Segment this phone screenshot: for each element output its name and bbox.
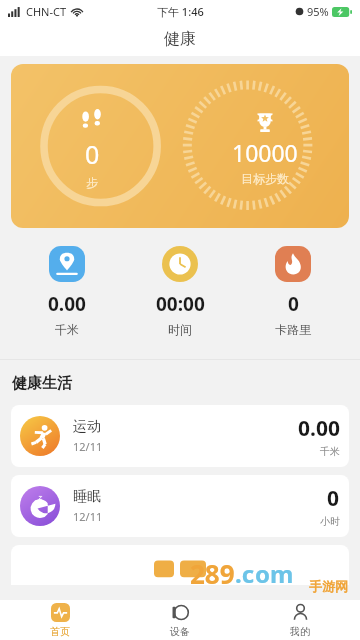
staticText: 0 <box>288 291 299 317</box>
staticText: 手游网 <box>309 578 348 594</box>
staticText: 健康生活 <box>12 374 72 393</box>
staticText: 0.00 <box>48 291 86 317</box>
staticText: 00:00 <box>156 291 205 317</box>
staticText: 下午 1:46 <box>157 4 204 19</box>
staticText: 睡眠 <box>73 488 101 506</box>
staticText: 千米 <box>55 322 79 337</box>
button[interactable]: 0 <box>11 64 349 228</box>
staticText: om <box>255 557 294 590</box>
staticText: 我的 <box>290 625 310 638</box>
staticText: 小时 <box>320 515 340 528</box>
staticText: 首页 <box>50 625 70 638</box>
staticText: 时间 <box>168 322 192 337</box>
button[interactable]: 我的 <box>240 600 360 640</box>
staticText: 运动 <box>73 418 101 436</box>
button[interactable] <box>11 545 349 585</box>
staticText: 0 <box>327 484 340 513</box>
staticText: 千米 <box>320 445 340 458</box>
staticText: 步 <box>86 175 98 190</box>
button[interactable]: 0.00 <box>17 244 117 339</box>
button[interactable]: 00:00 <box>130 244 230 339</box>
button[interactable]: 设备 <box>120 600 240 640</box>
staticText: 卡路里 <box>275 322 311 337</box>
staticText: CHN-CT <box>26 4 67 19</box>
staticText: 健康 <box>164 29 196 49</box>
button[interactable]: 首页 <box>0 600 120 640</box>
staticText: 289 <box>190 556 235 591</box>
staticText: 设备 <box>170 625 190 638</box>
staticText: 10000 <box>232 137 298 168</box>
staticText: 目标步数 <box>241 171 289 186</box>
staticText: 0.00 <box>298 414 340 443</box>
button[interactable]: 0 <box>243 244 343 339</box>
staticText: .c <box>235 557 255 590</box>
staticText: 95% <box>307 4 329 19</box>
staticText: 0 <box>85 137 100 171</box>
staticText: 12/11 <box>73 439 103 454</box>
staticText: 12/11 <box>73 509 103 524</box>
button[interactable]: 睡眠 <box>11 475 349 537</box>
button[interactable]: 运动 <box>11 405 349 467</box>
